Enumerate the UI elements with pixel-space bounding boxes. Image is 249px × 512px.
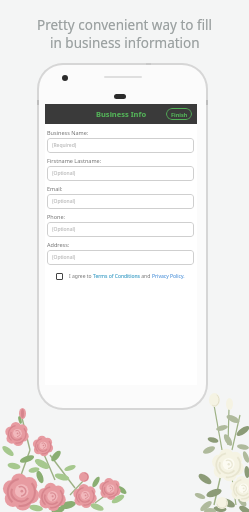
button[interactable]: (Optional) xyxy=(47,194,194,209)
staticText: Terms of Conditions xyxy=(93,273,140,280)
staticText: Address: xyxy=(47,241,70,248)
staticText: Firstname Lastname: xyxy=(47,157,102,164)
button[interactable]: (Optional) xyxy=(47,250,194,265)
staticText: I agree to xyxy=(69,273,93,280)
button[interactable]: I agree to xyxy=(56,273,194,280)
staticText: Privacy Policy. xyxy=(152,273,185,280)
staticText: and xyxy=(140,273,152,280)
button[interactable]: (Optional) xyxy=(47,166,194,181)
staticText: (Required) xyxy=(52,142,77,149)
staticText: (Optional) xyxy=(52,226,76,233)
button[interactable]: (Optional) xyxy=(47,222,194,237)
staticText: Phone: xyxy=(47,213,66,220)
staticText: Finish xyxy=(171,111,188,118)
staticText: Pretty convenient way to fill xyxy=(37,16,213,34)
button[interactable]: (Required) xyxy=(47,138,194,153)
staticText: (Optional) xyxy=(52,170,76,177)
staticText: in business information xyxy=(50,34,200,52)
staticText: (Optional) xyxy=(52,198,76,205)
button[interactable]: Finish xyxy=(166,108,192,120)
staticText: (Optional) xyxy=(52,254,76,261)
staticText: Business Name: xyxy=(47,129,89,136)
staticText: Business Info xyxy=(96,109,147,119)
staticText: Email: xyxy=(47,185,63,192)
